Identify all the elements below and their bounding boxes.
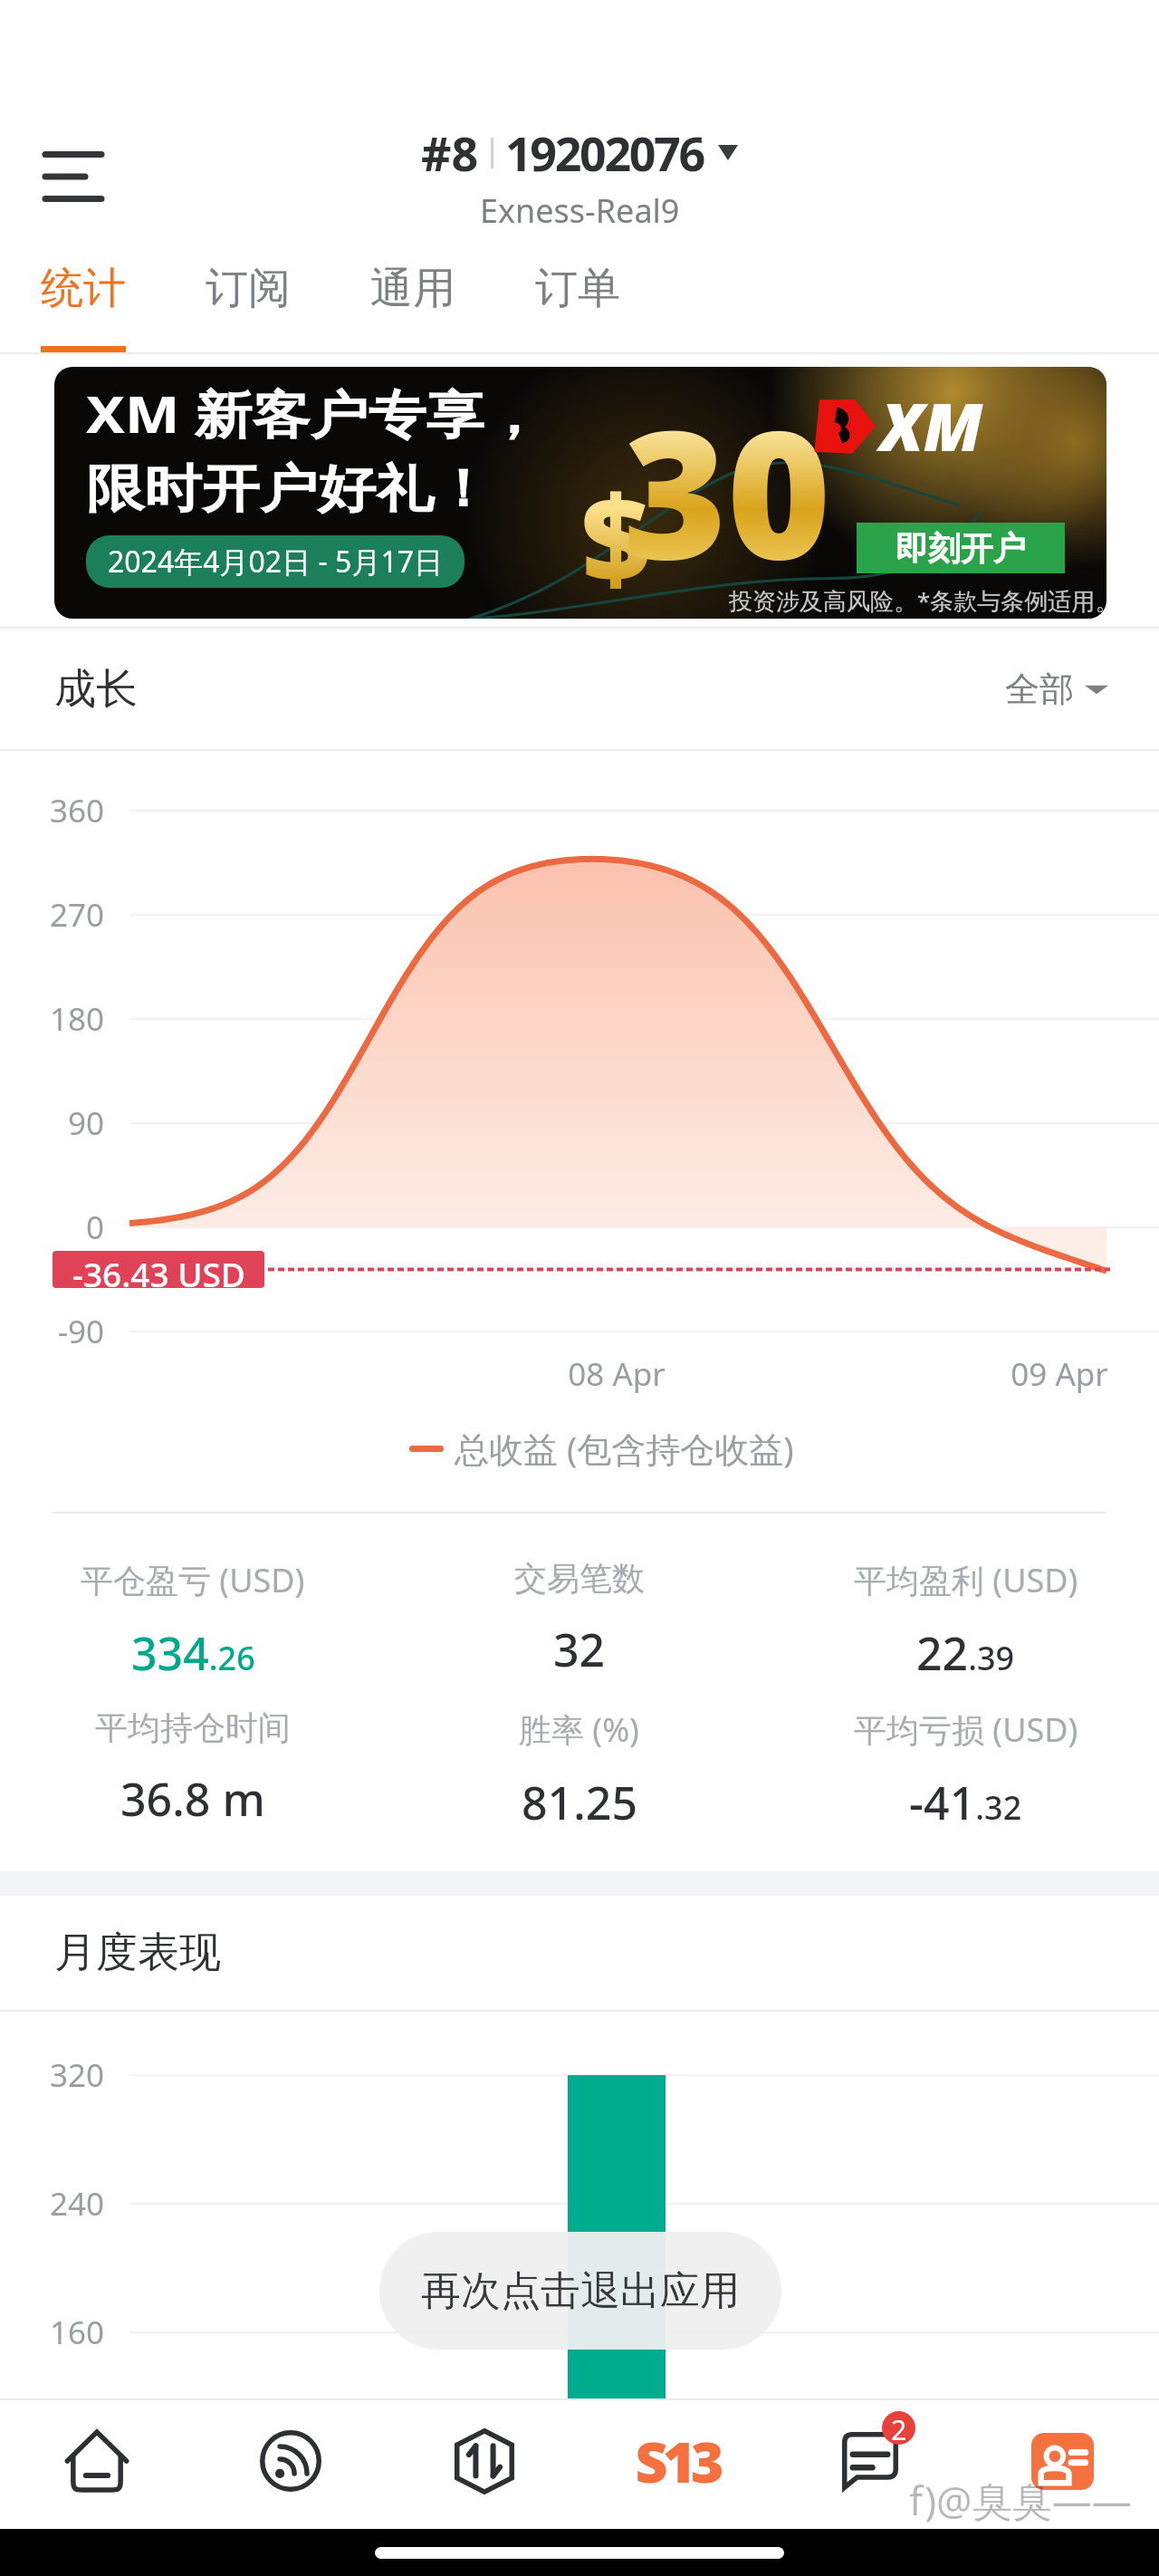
button[interactable]: S13 <box>580 2397 773 2525</box>
staticText: 180 <box>0 997 104 1041</box>
staticText: 09 Apr <box>946 1352 1159 1396</box>
staticText: 平均持仓时间 <box>95 1707 291 1748</box>
staticText: 360 <box>0 789 104 832</box>
staticText: 即刻开户 <box>896 528 1026 569</box>
button[interactable]: 订阅 <box>206 249 291 352</box>
staticText: 320 <box>0 2053 104 2097</box>
staticText: 成长 <box>54 663 138 716</box>
staticText: f)@臭臭—— <box>909 2473 1132 2527</box>
staticText: 投资涉及高风险。*条款与条例适用。 <box>729 584 1106 617</box>
button[interactable]: 全部 <box>1005 668 1108 711</box>
button[interactable]: 即刻开户 <box>857 523 1065 573</box>
staticText: XM <box>880 381 983 470</box>
staticText: 统计 <box>41 262 126 315</box>
staticText: -36.43 USD <box>72 1251 245 1288</box>
staticText: 通用 <box>370 262 455 315</box>
staticText: 32 <box>553 1619 606 1680</box>
staticText: 270 <box>0 893 104 937</box>
staticText: -90 <box>0 1310 104 1353</box>
button[interactable]: #8 <box>421 120 738 233</box>
staticText: 81.25 <box>522 1772 637 1833</box>
staticText: 月度表现 <box>54 1927 221 1979</box>
staticText: 再次点击退出应用 <box>421 2266 740 2316</box>
staticText: 22.39 <box>916 1622 1015 1684</box>
staticText: 0 <box>0 1206 104 1249</box>
button[interactable]: 通用 <box>370 249 455 352</box>
staticText: $ <box>581 454 651 617</box>
staticText: 2024年4月02日 - 5月17日 <box>108 542 443 582</box>
button[interactable]: 订单 <box>535 249 620 352</box>
button[interactable]: 统计 <box>41 249 126 352</box>
staticText: 订单 <box>535 262 620 315</box>
staticText: 平均盈利 (USD) <box>854 1558 1078 1602</box>
button[interactable]: XM 新客户专享， <box>54 367 1106 619</box>
staticText: Exness-Real9 <box>480 188 680 233</box>
staticText: 160 <box>0 2311 104 2354</box>
button[interactable]: Messages <box>773 2397 966 2525</box>
staticText: S13 <box>635 2423 719 2499</box>
staticText: #8 <box>421 120 479 185</box>
staticText: 30 <box>623 369 831 610</box>
button[interactable]: Home <box>0 2397 194 2525</box>
button[interactable]: Menu <box>31 134 116 219</box>
staticText: 2 <box>891 2411 907 2445</box>
staticText: 334.26 <box>131 1622 255 1684</box>
staticText: -41.32 <box>909 1772 1022 1833</box>
staticText: 平均亏损 (USD) <box>854 1707 1078 1752</box>
staticText: 08 Apr <box>503 1352 730 1396</box>
staticText: 总收益 (包含持仓收益) <box>455 1425 794 1472</box>
staticText: 36.8 m <box>120 1768 265 1830</box>
staticText: 胜率 (%) <box>519 1707 639 1752</box>
staticText: 平仓盈亏 (USD) <box>81 1558 305 1602</box>
staticText: 240 <box>0 2182 104 2225</box>
staticText: 全部 <box>1005 668 1074 711</box>
button[interactable]: Profile <box>966 2397 1159 2525</box>
staticText: 订阅 <box>206 262 291 315</box>
button[interactable]: Signals <box>194 2397 388 2525</box>
staticText: 交易笔数 <box>514 1558 645 1599</box>
staticText: 限时开户好礼！ <box>86 457 492 522</box>
staticText: XM 新客户专享， <box>86 379 542 448</box>
staticText: 19202076 <box>505 120 704 185</box>
staticText: 90 <box>0 1101 104 1145</box>
button[interactable]: Trade <box>388 2397 580 2525</box>
